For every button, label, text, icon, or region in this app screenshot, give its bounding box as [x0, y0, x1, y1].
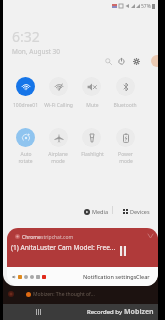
button[interactable]	[109, 75, 142, 103]
staticText: (1) AnitaLuster Cam Model: Free...	[11, 243, 116, 252]
button[interactable]	[75, 75, 108, 103]
staticText: Wi-Fi Calling	[44, 102, 73, 109]
button[interactable]: Chrome	[7, 228, 158, 267]
button[interactable]: Profile	[151, 55, 158, 67]
button[interactable]: Pause	[115, 243, 131, 259]
staticText: Notification settings	[83, 273, 137, 280]
button[interactable]	[42, 75, 75, 103]
staticText: Power	[118, 151, 133, 158]
button[interactable]	[109, 126, 142, 154]
button[interactable]	[9, 126, 42, 154]
staticText: Clear	[136, 273, 150, 280]
button[interactable]: Search	[101, 54, 115, 68]
button[interactable]: Expand	[145, 231, 155, 241]
staticText: Mobizen: The thought of...	[33, 291, 95, 298]
staticText: 6:32	[12, 27, 40, 46]
staticText: mode	[51, 158, 65, 165]
staticText: 100dree01	[13, 102, 38, 109]
staticText: mode	[119, 158, 133, 165]
button[interactable]: Clear	[136, 273, 150, 280]
button[interactable]	[9, 75, 42, 103]
button[interactable]: Recents	[32, 306, 44, 318]
staticText: Devices	[130, 208, 150, 215]
button[interactable]: Notification settings	[83, 273, 137, 280]
button[interactable]: Devices	[123, 208, 150, 215]
staticText: Mon, August 30	[12, 47, 61, 56]
staticText: Mobizen	[124, 307, 154, 317]
staticText: Bluetooth	[113, 102, 137, 109]
button[interactable]: Media	[84, 208, 108, 215]
staticText: Mute	[86, 102, 99, 109]
staticText: Media	[92, 208, 108, 215]
staticText: Auto	[20, 151, 32, 158]
button[interactable]: Power	[114, 54, 128, 68]
staticText: 57%	[141, 3, 151, 10]
staticText: Flashlight	[81, 151, 104, 158]
staticText: Recorded by	[87, 308, 122, 316]
staticText: stripchat.com	[41, 234, 74, 241]
staticText: Airplane	[48, 151, 68, 158]
staticText: rotate	[18, 158, 33, 165]
button[interactable]: Settings	[129, 54, 143, 68]
button[interactable]	[42, 126, 75, 154]
button[interactable]	[75, 126, 108, 154]
staticText: Chrome	[22, 234, 41, 241]
